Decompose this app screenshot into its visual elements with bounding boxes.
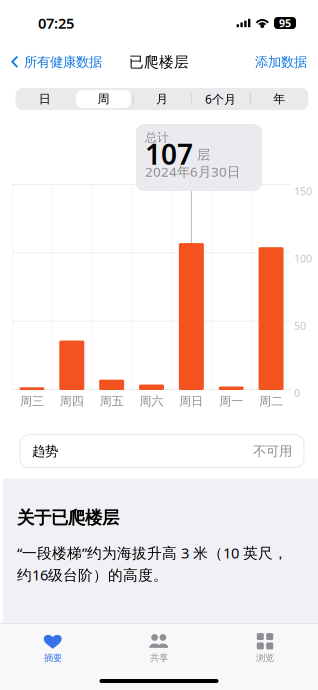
staticText: 共享	[150, 652, 168, 664]
staticText: 浏览	[256, 652, 274, 664]
button[interactable]: 所有健康数据	[0, 47, 110, 77]
staticText: 周五	[100, 394, 124, 409]
staticText: 107	[145, 135, 193, 173]
staticText: 日	[39, 92, 51, 106]
button[interactable]: 共享	[106, 629, 212, 667]
staticText: 周三	[20, 394, 44, 409]
staticText: 100	[294, 251, 312, 265]
staticText: 添加数据	[255, 54, 307, 70]
staticText: 摘要	[44, 652, 62, 664]
staticText: 年	[273, 92, 285, 106]
staticText: 周六	[139, 394, 163, 409]
button[interactable]: 周	[74, 88, 133, 110]
staticText: 周二	[259, 394, 283, 409]
button[interactable]: 日	[15, 88, 74, 110]
staticText: 约16级台阶）的高度。	[17, 565, 168, 584]
staticText: 周一	[219, 394, 243, 409]
staticText: 不可用	[253, 443, 292, 459]
staticText: 50	[294, 319, 306, 333]
staticText: 趋势	[32, 443, 58, 459]
staticText: 0	[294, 386, 300, 400]
staticText: 月	[156, 92, 168, 106]
button[interactable]: 6个月	[191, 88, 250, 110]
staticText: 150	[294, 184, 312, 198]
staticText: 95	[279, 16, 291, 30]
button[interactable]: 浏览	[212, 629, 318, 667]
staticText: 6个月	[205, 91, 236, 107]
staticText: 2024年6月30日	[145, 163, 240, 180]
button[interactable]: 月	[133, 88, 191, 110]
staticText: “一段楼梯”约为海拔升高 3 米（10 英尺，	[17, 543, 288, 562]
button[interactable]: 添加数据	[245, 47, 318, 77]
button[interactable]: 趋势	[20, 435, 304, 468]
button[interactable]: 年	[250, 88, 308, 110]
staticText: 周日	[179, 394, 203, 409]
staticText: 已爬楼层	[129, 53, 189, 71]
staticText: 层	[197, 147, 210, 163]
button[interactable]: 摘要	[0, 629, 106, 667]
staticText: 关于已爬楼层	[17, 507, 119, 528]
staticText: 周	[97, 92, 109, 106]
staticText: 所有健康数据	[24, 54, 102, 70]
staticText: 07:25	[38, 13, 74, 33]
staticText: 总计	[145, 130, 169, 145]
staticText: 周四	[60, 394, 84, 409]
